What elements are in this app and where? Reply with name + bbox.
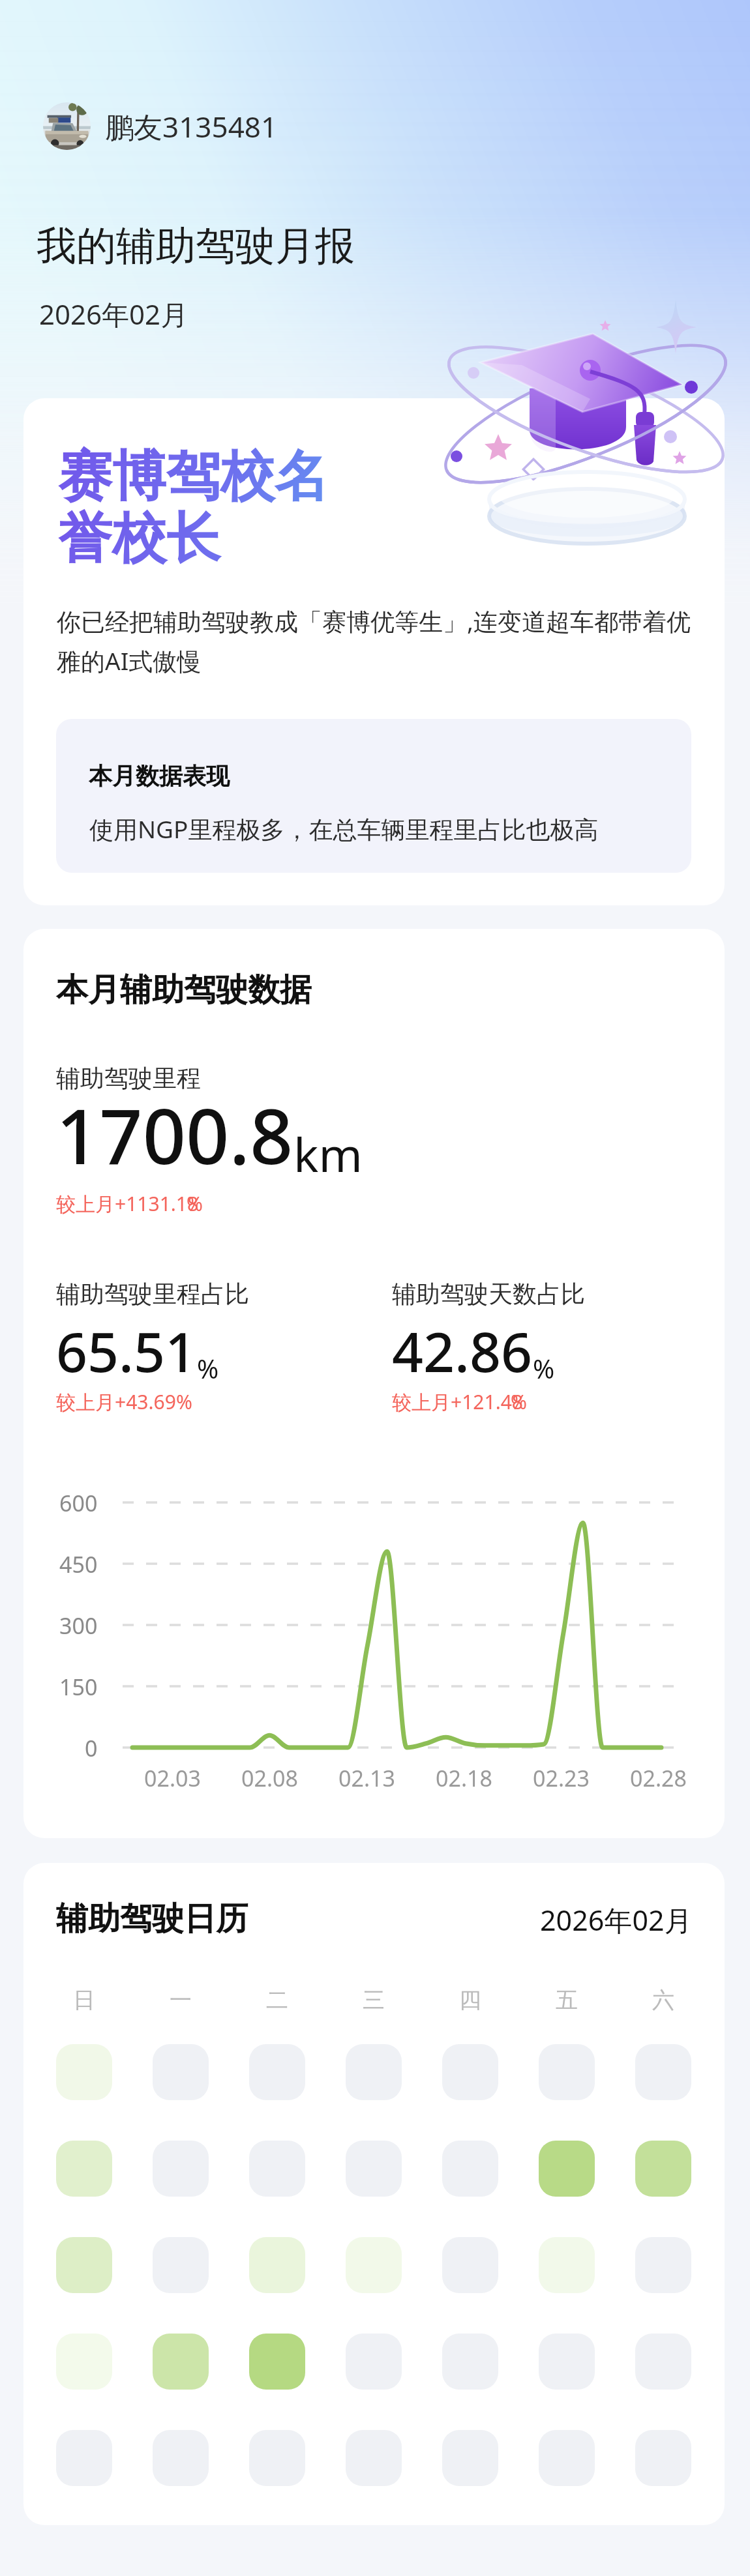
staticText: 65.51 bbox=[56, 1313, 197, 1388]
staticText: 一 bbox=[170, 1986, 192, 2014]
staticText: 02.18 bbox=[436, 1763, 492, 1793]
staticText: 赛博驾校名 bbox=[58, 443, 329, 511]
staticText: 辅助驾驶日历 bbox=[56, 1899, 248, 1939]
staticText: 你已经把辅助驾驶教成「赛博优等生」,连变道超车都带着优 bbox=[57, 604, 691, 637]
button[interactable]: Day bbox=[635, 2334, 691, 2390]
staticText: 450 bbox=[59, 1549, 98, 1579]
staticText: 六 bbox=[652, 1986, 674, 2014]
button[interactable]: Day bbox=[539, 2430, 595, 2486]
staticText: 五 bbox=[556, 1986, 578, 2014]
button[interactable]: Day bbox=[56, 2430, 112, 2486]
button[interactable]: Day bbox=[249, 2430, 305, 2486]
staticText: 辅助驾驶里程占比 bbox=[56, 1279, 249, 1310]
staticText: 02.13 bbox=[338, 1763, 395, 1793]
button[interactable]: Day bbox=[153, 2141, 209, 2197]
staticText: 誉校长 bbox=[58, 505, 220, 573]
button[interactable]: Day bbox=[56, 2334, 112, 2390]
staticText: 1700.8 bbox=[56, 1083, 293, 1186]
button[interactable]: Day bbox=[249, 2334, 305, 2390]
staticText: 本月数据表现 bbox=[89, 761, 230, 791]
button[interactable]: Day bbox=[635, 2141, 691, 2197]
button[interactable]: Day bbox=[346, 2044, 402, 2100]
staticText: 600 bbox=[59, 1488, 98, 1518]
staticText: % bbox=[197, 1351, 219, 1386]
staticText: 日 bbox=[73, 1986, 95, 2014]
staticText: 辅助驾驶天数占比 bbox=[392, 1279, 585, 1310]
button[interactable]: Day bbox=[56, 2044, 112, 2100]
staticText: 较上月+1131.18 bbox=[56, 1190, 199, 1217]
button[interactable]: Day bbox=[153, 2044, 209, 2100]
button[interactable]: Day bbox=[539, 2141, 595, 2197]
button[interactable]: Day bbox=[442, 2334, 498, 2390]
button[interactable]: Day bbox=[249, 2044, 305, 2100]
button[interactable]: Day bbox=[346, 2430, 402, 2486]
staticText: 2026年02月 bbox=[39, 295, 188, 332]
staticText: 02.08 bbox=[241, 1763, 298, 1793]
button[interactable]: Day bbox=[539, 2044, 595, 2100]
staticText: 四 bbox=[459, 1986, 481, 2014]
button[interactable]: Day bbox=[249, 2237, 305, 2293]
staticText: % bbox=[511, 1388, 527, 1415]
button[interactable]: Day bbox=[442, 2141, 498, 2197]
button[interactable]: Day bbox=[153, 2430, 209, 2486]
other: User avatar bbox=[43, 102, 91, 150]
staticText: 2026年02月 bbox=[540, 1901, 693, 1939]
button[interactable]: User avatar bbox=[43, 102, 278, 150]
staticText: 鹏友3135481 bbox=[105, 107, 278, 146]
staticText: km bbox=[293, 1122, 363, 1186]
button[interactable]: Day bbox=[442, 2430, 498, 2486]
staticText: % bbox=[533, 1351, 555, 1386]
staticText: 02.03 bbox=[144, 1763, 201, 1793]
button[interactable]: Day bbox=[539, 2334, 595, 2390]
staticText: 较上月+43.69 bbox=[56, 1388, 176, 1415]
staticText: 二 bbox=[266, 1986, 288, 2014]
button[interactable]: Day bbox=[153, 2334, 209, 2390]
button[interactable]: Day bbox=[346, 2334, 402, 2390]
button[interactable]: Day bbox=[442, 2237, 498, 2293]
button[interactable]: Day bbox=[346, 2237, 402, 2293]
staticText: % bbox=[187, 1190, 203, 1217]
staticText: 雅的AI式傲慢 bbox=[57, 644, 202, 677]
button[interactable]: Day bbox=[346, 2141, 402, 2197]
button[interactable]: Day bbox=[635, 2430, 691, 2486]
staticText: 本月辅助驾驶数据 bbox=[56, 970, 312, 1010]
staticText: 02.23 bbox=[533, 1763, 590, 1793]
staticText: 02.28 bbox=[630, 1763, 687, 1793]
staticText: 42.86 bbox=[392, 1313, 533, 1388]
button[interactable]: Day bbox=[442, 2044, 498, 2100]
button[interactable]: Day bbox=[56, 2141, 112, 2197]
staticText: 使用NGP里程极多，在总车辆里程里占比也极高 bbox=[89, 812, 599, 845]
staticText: 300 bbox=[59, 1611, 98, 1641]
staticText: 0 bbox=[85, 1733, 98, 1763]
button[interactable]: Day bbox=[635, 2044, 691, 2100]
button[interactable]: Day bbox=[635, 2237, 691, 2293]
button[interactable]: Day bbox=[249, 2141, 305, 2197]
button[interactable]: Day bbox=[153, 2237, 209, 2293]
staticText: % bbox=[176, 1388, 192, 1415]
staticText: 辅助驾驶里程 bbox=[56, 1063, 201, 1094]
staticText: 我的辅助驾驶月报 bbox=[37, 221, 355, 271]
button[interactable]: Day bbox=[56, 2237, 112, 2293]
staticText: 三 bbox=[363, 1986, 385, 2014]
button[interactable]: Day bbox=[539, 2237, 595, 2293]
staticText: 较上月+121.48 bbox=[392, 1388, 523, 1415]
staticText: 150 bbox=[59, 1672, 98, 1702]
